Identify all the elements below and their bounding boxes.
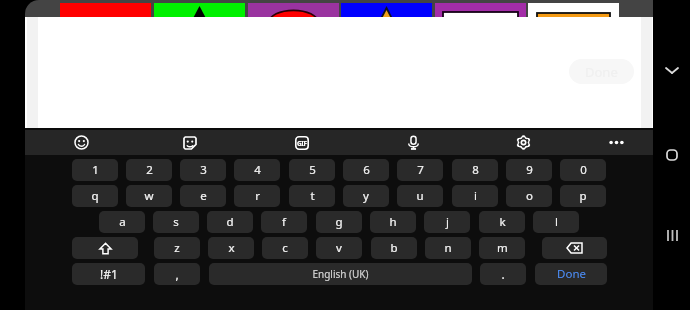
- staticText: d: [226, 214, 234, 230]
- button[interactable]: t: [289, 185, 335, 207]
- button[interactable]: Settings: [510, 130, 536, 155]
- button[interactable]: 2: [126, 159, 172, 181]
- staticText: l: [555, 214, 558, 230]
- button[interactable]: k: [479, 211, 525, 233]
- button[interactable]: .: [480, 263, 526, 285]
- button[interactable]: 8: [452, 159, 498, 181]
- button[interactable]: q: [72, 185, 118, 207]
- button[interactable]: o: [506, 185, 552, 207]
- button[interactable]: v: [316, 237, 362, 259]
- staticText: Done: [557, 266, 586, 282]
- button[interactable]: w: [126, 185, 172, 207]
- staticText: !#1: [100, 266, 118, 282]
- staticText: s: [173, 214, 179, 230]
- button[interactable]: x: [208, 237, 254, 259]
- staticText: 2: [146, 162, 153, 178]
- button[interactable]: [542, 237, 607, 259]
- staticText: 0: [580, 162, 587, 178]
- button[interactable]: y: [343, 185, 389, 207]
- button[interactable]: p: [560, 185, 606, 207]
- staticText: 1: [92, 162, 99, 178]
- staticText: 7: [417, 162, 424, 178]
- button[interactable]: Back: [661, 59, 683, 81]
- button[interactable]: Home: [661, 144, 683, 166]
- staticText: i: [474, 188, 477, 204]
- button[interactable]: !#1: [72, 263, 145, 285]
- button[interactable]: 4: [234, 159, 280, 181]
- staticText: a: [119, 214, 126, 230]
- button[interactable]: Voice input: [400, 130, 426, 155]
- staticText: w: [144, 188, 154, 204]
- staticText: v: [336, 240, 342, 256]
- button[interactable]: c: [262, 237, 308, 259]
- staticText: 6: [363, 162, 370, 178]
- staticText: c: [282, 240, 288, 256]
- staticText: 9: [526, 162, 533, 178]
- button[interactable]: d: [207, 211, 253, 233]
- button[interactable]: s: [153, 211, 199, 233]
- button[interactable]: GIF: [289, 130, 315, 155]
- button[interactable]: 5: [289, 159, 335, 181]
- button[interactable]: ,: [154, 263, 200, 285]
- button[interactable]: a: [99, 211, 145, 233]
- staticText: 5: [309, 162, 316, 178]
- staticText: English (UK): [312, 267, 369, 281]
- button[interactable]: l: [533, 211, 579, 233]
- button[interactable]: 9: [506, 159, 552, 181]
- button[interactable]: Stickers: [177, 130, 203, 155]
- staticText: b: [390, 240, 398, 256]
- staticText: .: [501, 266, 505, 282]
- staticText: 4: [254, 162, 261, 178]
- button[interactable]: 1: [72, 159, 118, 181]
- button[interactable]: i: [452, 185, 498, 207]
- button[interactable]: j: [424, 211, 470, 233]
- button[interactable]: More options: [603, 130, 629, 155]
- staticText: e: [200, 188, 207, 204]
- staticText: 8: [472, 162, 479, 178]
- button[interactable]: Emoji: [68, 130, 94, 155]
- staticText: r: [255, 188, 260, 204]
- button[interactable]: r: [234, 185, 280, 207]
- button[interactable]: 6: [343, 159, 389, 181]
- button[interactable]: 3: [180, 159, 226, 181]
- staticText: t: [310, 188, 315, 204]
- button[interactable]: 7: [397, 159, 443, 181]
- staticText: z: [174, 240, 180, 256]
- button[interactable]: English (UK): [209, 263, 472, 285]
- button[interactable]: Done: [535, 263, 607, 285]
- button[interactable]: g: [316, 211, 362, 233]
- button[interactable]: b: [371, 237, 417, 259]
- staticText: f: [282, 214, 286, 230]
- staticText: o: [526, 188, 533, 204]
- button[interactable]: e: [180, 185, 226, 207]
- button[interactable]: Recents: [661, 224, 683, 246]
- staticText: GIF: [297, 139, 307, 148]
- button[interactable]: 0: [560, 159, 606, 181]
- button[interactable]: z: [154, 237, 200, 259]
- button[interactable]: h: [370, 211, 416, 233]
- button[interactable]: f: [261, 211, 307, 233]
- staticText: x: [228, 240, 235, 256]
- staticText: g: [335, 214, 343, 230]
- staticText: u: [416, 188, 424, 204]
- staticText: 3: [200, 162, 207, 178]
- staticText: h: [389, 214, 397, 230]
- staticText: y: [363, 188, 369, 204]
- button[interactable]: n: [425, 237, 471, 259]
- staticText: ,: [175, 266, 179, 282]
- staticText: p: [579, 188, 587, 204]
- staticText: k: [499, 214, 506, 230]
- button[interactable]: u: [397, 185, 443, 207]
- staticText: n: [444, 240, 452, 256]
- staticText: j: [446, 214, 449, 230]
- button[interactable]: m: [479, 237, 525, 259]
- staticText: m: [497, 240, 508, 256]
- button[interactable]: [72, 237, 138, 259]
- staticText: q: [91, 188, 99, 204]
